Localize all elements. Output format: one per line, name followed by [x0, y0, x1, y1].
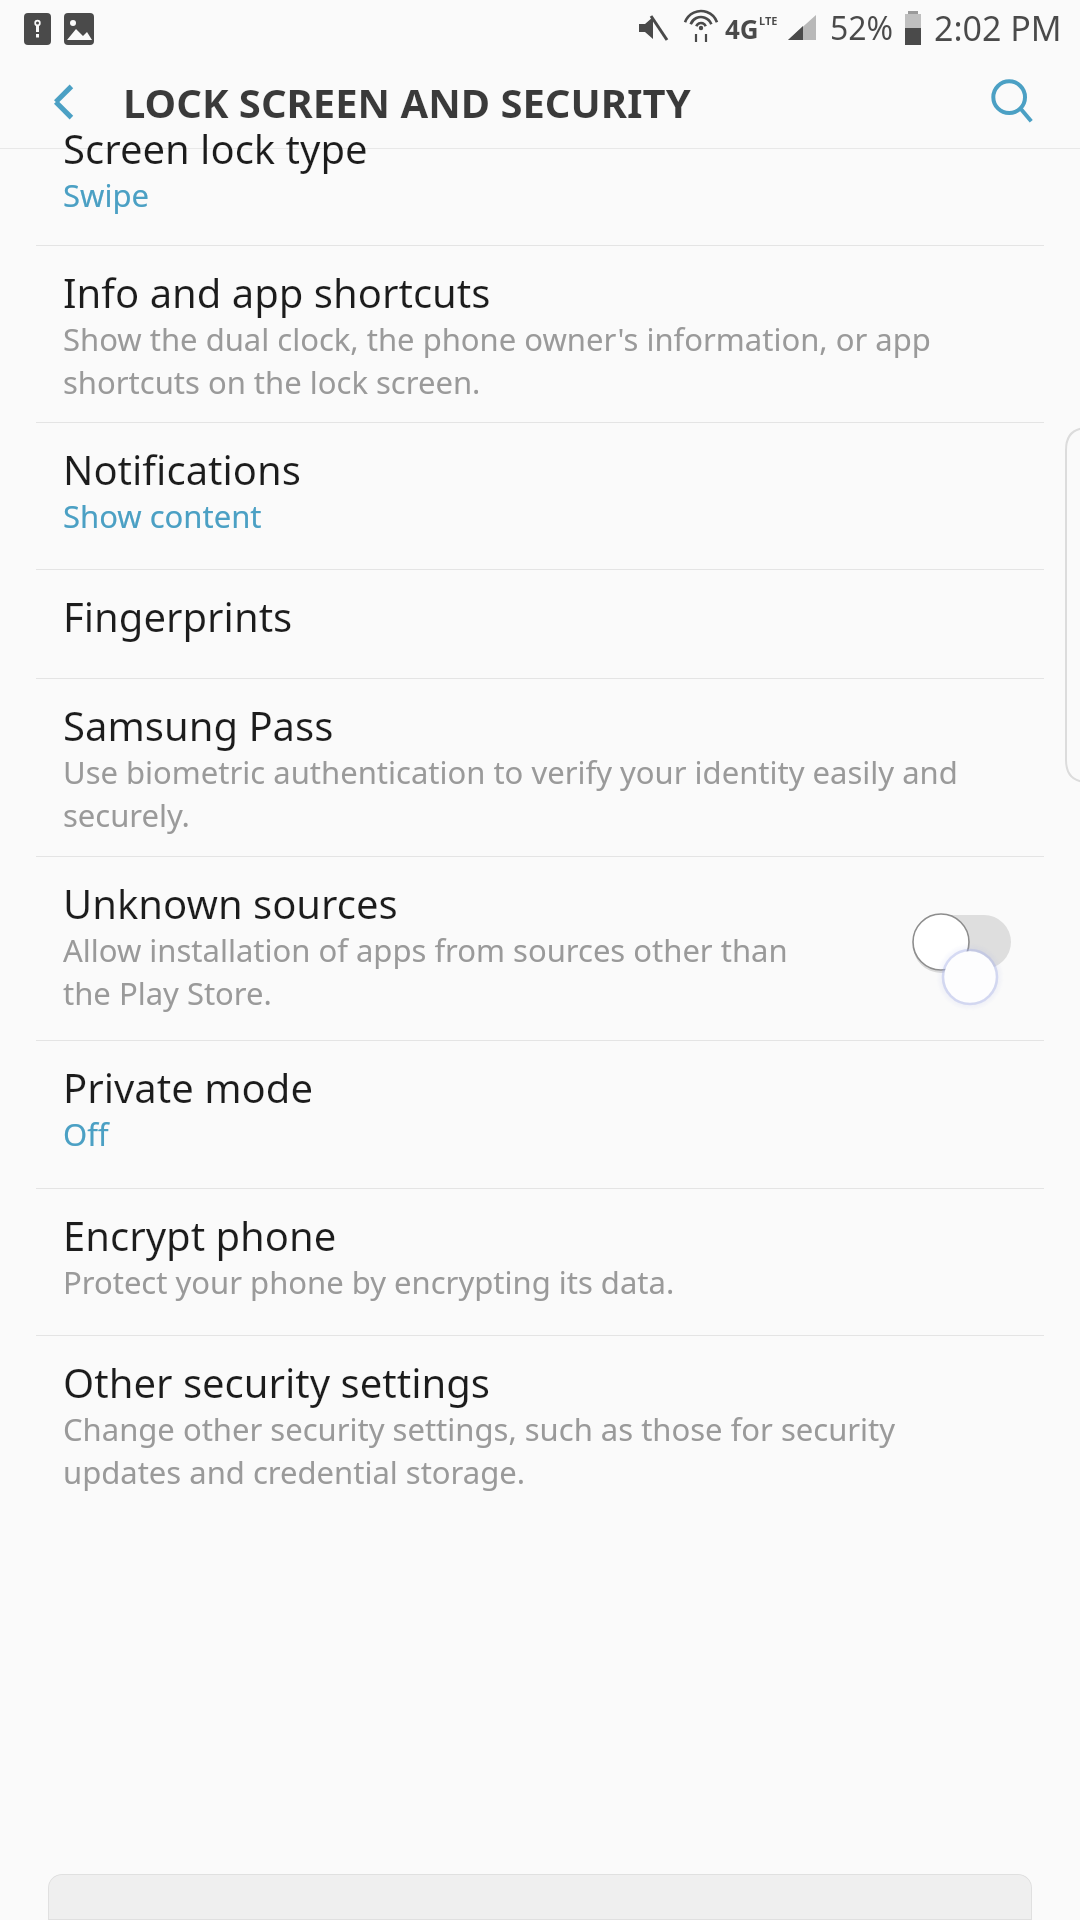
staticText: 2:02 PM: [934, 5, 1062, 51]
staticText: Samsung Pass: [63, 698, 334, 752]
button[interactable]: [0, 442, 1080, 569]
button[interactable]: Unknown sources switch, off: [912, 914, 1012, 970]
staticText: Show the dual clock, the phone owner's i…: [63, 318, 993, 403]
staticText: Screen lock type: [63, 121, 368, 175]
staticText: Change other security settings, such as …: [63, 1408, 993, 1493]
staticText: Notifications: [63, 442, 301, 496]
staticText: Use biometric authentication to verify y…: [63, 751, 993, 836]
staticText: LOCK SCREEN AND SECURITY: [123, 75, 691, 129]
staticText: Other security settings: [63, 1355, 490, 1409]
staticText: Info and app shortcuts: [63, 265, 491, 319]
staticText: Allow installation of apps from sources …: [63, 929, 993, 1014]
staticText: Swipe: [63, 174, 993, 216]
button[interactable]: [0, 1355, 1080, 1479]
staticText: Unknown sources: [63, 876, 398, 930]
button[interactable]: Back: [18, 55, 112, 149]
button[interactable]: Search: [966, 55, 1060, 149]
staticText: Private mode: [63, 1060, 313, 1114]
staticText: LTE: [759, 13, 778, 28]
button[interactable]: [48, 1874, 1032, 1920]
staticText: Show content: [63, 495, 993, 537]
button[interactable]: [0, 698, 1080, 856]
button[interactable]: [0, 149, 1080, 245]
staticText: 4G: [725, 11, 759, 46]
button[interactable]: [0, 1208, 1080, 1335]
button[interactable]: [0, 589, 1080, 678]
staticText: Off: [63, 1113, 993, 1155]
staticText: Fingerprints: [63, 589, 293, 643]
button[interactable]: [0, 876, 1080, 1040]
button[interactable]: [0, 1060, 1080, 1188]
staticText: Protect your phone by encrypting its dat…: [63, 1261, 993, 1303]
staticText: 52%: [830, 6, 894, 50]
button[interactable]: [0, 265, 1080, 422]
staticText: Encrypt phone: [63, 1208, 337, 1262]
